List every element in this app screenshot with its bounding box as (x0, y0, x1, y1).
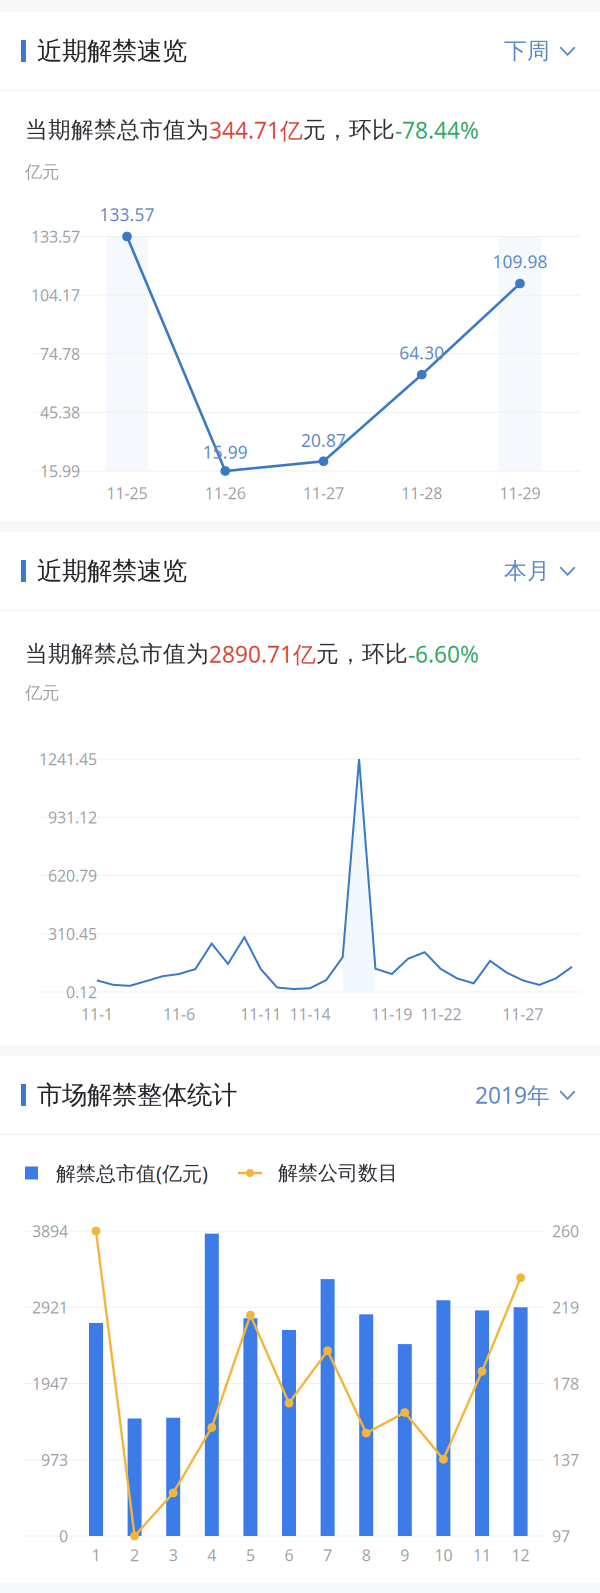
staticText: 344.71亿 (209, 115, 303, 145)
staticText: 3 (169, 1544, 178, 1566)
staticText: 11-14 (289, 1003, 330, 1025)
staticText: 元， (316, 640, 362, 668)
staticText: -78.44% (395, 115, 479, 145)
staticText: 11-26 (205, 482, 246, 504)
staticText: 解禁总市值(亿元) (56, 1160, 208, 1186)
staticText: 11-11 (240, 1003, 281, 1025)
staticText: 15.99 (40, 460, 80, 482)
staticText: 10 (434, 1544, 452, 1566)
staticText: 973 (41, 1449, 68, 1470)
button[interactable]: 2019年 (475, 1064, 600, 1126)
staticText: 11-6 (163, 1003, 195, 1025)
staticText: 9 (400, 1544, 409, 1566)
staticText: 8 (362, 1544, 371, 1566)
staticText: 当期解禁总市值为 (25, 116, 209, 144)
staticText: 310.45 (48, 923, 97, 944)
staticText: 620.79 (48, 865, 97, 886)
staticText: 133.57 (99, 203, 154, 226)
staticText: 45.38 (40, 402, 80, 423)
staticText: 环比 (349, 116, 395, 144)
staticText: 亿元 (25, 682, 59, 704)
staticText: 931.12 (48, 807, 97, 828)
staticText: 11-27 (502, 1003, 543, 1025)
staticText: 2890.71亿 (209, 639, 316, 669)
staticText: 下周 (504, 37, 550, 65)
staticText: 178 (552, 1373, 579, 1394)
staticText: 2 (130, 1544, 139, 1566)
staticText: 3894 (32, 1220, 68, 1242)
button[interactable]: 下周 (504, 21, 600, 81)
staticText: 11-22 (420, 1003, 461, 1025)
staticText: 亿元 (25, 161, 59, 183)
staticText: 11-1 (81, 1003, 113, 1025)
staticText: 64.30 (399, 341, 444, 364)
staticText: 15.99 (203, 440, 248, 463)
staticText: 1947 (32, 1373, 68, 1394)
staticText: 解禁公司数目 (278, 1161, 398, 1185)
staticText: 4 (207, 1544, 216, 1566)
staticText: 市场解禁整体统计 (37, 1079, 237, 1110)
staticText: 本月 (504, 557, 550, 585)
staticText: -6.60% (408, 639, 479, 669)
staticText: 元， (303, 116, 349, 144)
staticText: 11-25 (106, 482, 147, 504)
staticText: 7 (323, 1544, 332, 1566)
staticText: 11-19 (371, 1003, 412, 1025)
staticText: 74.78 (40, 343, 80, 364)
staticText: 近期解禁速览 (37, 35, 187, 66)
staticText: 环比 (362, 640, 408, 668)
staticText: 104.17 (31, 284, 80, 306)
staticText: 1 (91, 1544, 100, 1566)
staticText: 5 (246, 1544, 255, 1566)
staticText: 12 (512, 1544, 530, 1566)
staticText: 20.87 (301, 429, 346, 452)
staticText: 137 (552, 1449, 579, 1470)
staticText: 11 (473, 1544, 491, 1566)
button[interactable]: 本月 (504, 541, 600, 601)
staticText: 近期解禁速览 (37, 555, 187, 586)
staticText: 0.12 (66, 981, 97, 1003)
staticText: 当期解禁总市值为 (25, 640, 209, 668)
staticText: 260 (552, 1220, 579, 1242)
staticText: 11-27 (303, 482, 344, 504)
staticText: 11-29 (499, 482, 540, 504)
staticText: 109.98 (492, 250, 547, 273)
staticText: 0 (59, 1525, 68, 1547)
staticText: 219 (552, 1297, 579, 1318)
staticText: 97 (552, 1525, 570, 1547)
staticText: 2019年 (475, 1080, 550, 1110)
staticText: 1241.45 (39, 748, 97, 770)
staticText: 11-28 (401, 482, 442, 504)
staticText: 2921 (32, 1297, 68, 1318)
staticText: 6 (284, 1544, 293, 1566)
staticText: 133.57 (31, 226, 80, 247)
